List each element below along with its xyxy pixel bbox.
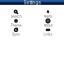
button[interactable]: Theme xyxy=(0,19,32,27)
staticText: Links xyxy=(43,32,52,36)
button[interactable]: Search xyxy=(0,10,32,18)
button[interactable]: About xyxy=(32,19,64,27)
staticText: Search xyxy=(10,14,21,18)
button[interactable]: Alerts xyxy=(32,10,64,18)
staticText: Sync xyxy=(12,32,20,36)
staticText: Settings xyxy=(23,0,40,5)
button[interactable]: Sync xyxy=(0,28,32,36)
staticText: About xyxy=(43,23,52,27)
button[interactable]: Links xyxy=(32,28,64,36)
staticText: Alerts xyxy=(43,14,52,18)
staticText: Theme xyxy=(10,23,21,27)
